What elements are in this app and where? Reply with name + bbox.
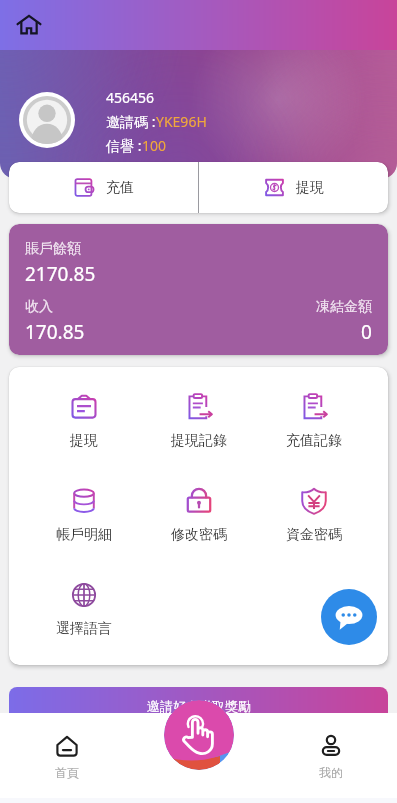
button[interactable]: 提現記錄 [141, 388, 256, 455]
staticText: 信譽 : [106, 136, 142, 155]
button[interactable]: 選擇語言 [26, 576, 141, 643]
staticText: 充值 [106, 179, 134, 197]
staticText: 我的 [319, 765, 343, 780]
staticText: 提現記錄 [171, 432, 227, 450]
staticText: YKE96H [156, 112, 207, 131]
button[interactable]: 提現 [199, 162, 388, 213]
staticText: 選擇語言 [56, 620, 112, 638]
staticText: 456456 [106, 88, 155, 107]
staticText: 凍結金額 [316, 298, 372, 316]
button[interactable]: 我的 [265, 713, 397, 780]
button[interactable]: 資金密碼 [256, 482, 371, 549]
staticText: 100 [142, 136, 167, 155]
button[interactable]: 修改密碼 [141, 482, 256, 549]
button[interactable]: Tap to start [164, 700, 234, 770]
button[interactable]: 帳戶明細 [26, 482, 141, 549]
staticText: 提現 [296, 179, 324, 197]
staticText: 0 [361, 319, 372, 345]
staticText: 2170.85 [25, 261, 96, 287]
staticText: 邀請好友賺取獎勵 [147, 698, 251, 714]
staticText: 修改密碼 [171, 526, 227, 544]
staticText: 邀請碼 : [106, 112, 156, 131]
staticText: 提現 [70, 432, 98, 450]
staticText: 賬戶餘額 [25, 240, 81, 258]
button[interactable]: 充值記錄 [256, 388, 371, 455]
staticText: 首頁 [55, 765, 79, 780]
staticText: 帳戶明細 [56, 526, 112, 544]
staticText: 170.85 [25, 319, 85, 345]
button[interactable]: 首頁 [0, 713, 133, 780]
staticText: 資金密碼 [286, 526, 342, 544]
button[interactable]: Home [13, 9, 45, 41]
staticText: 充值記錄 [286, 432, 342, 450]
button[interactable]: Customer service chat [321, 589, 377, 645]
button[interactable]: 邀請好友賺取獎勵 [9, 687, 388, 747]
button[interactable]: 充值 [9, 162, 198, 213]
button[interactable]: 提現 [26, 388, 141, 455]
staticText: 收入 [25, 298, 53, 316]
